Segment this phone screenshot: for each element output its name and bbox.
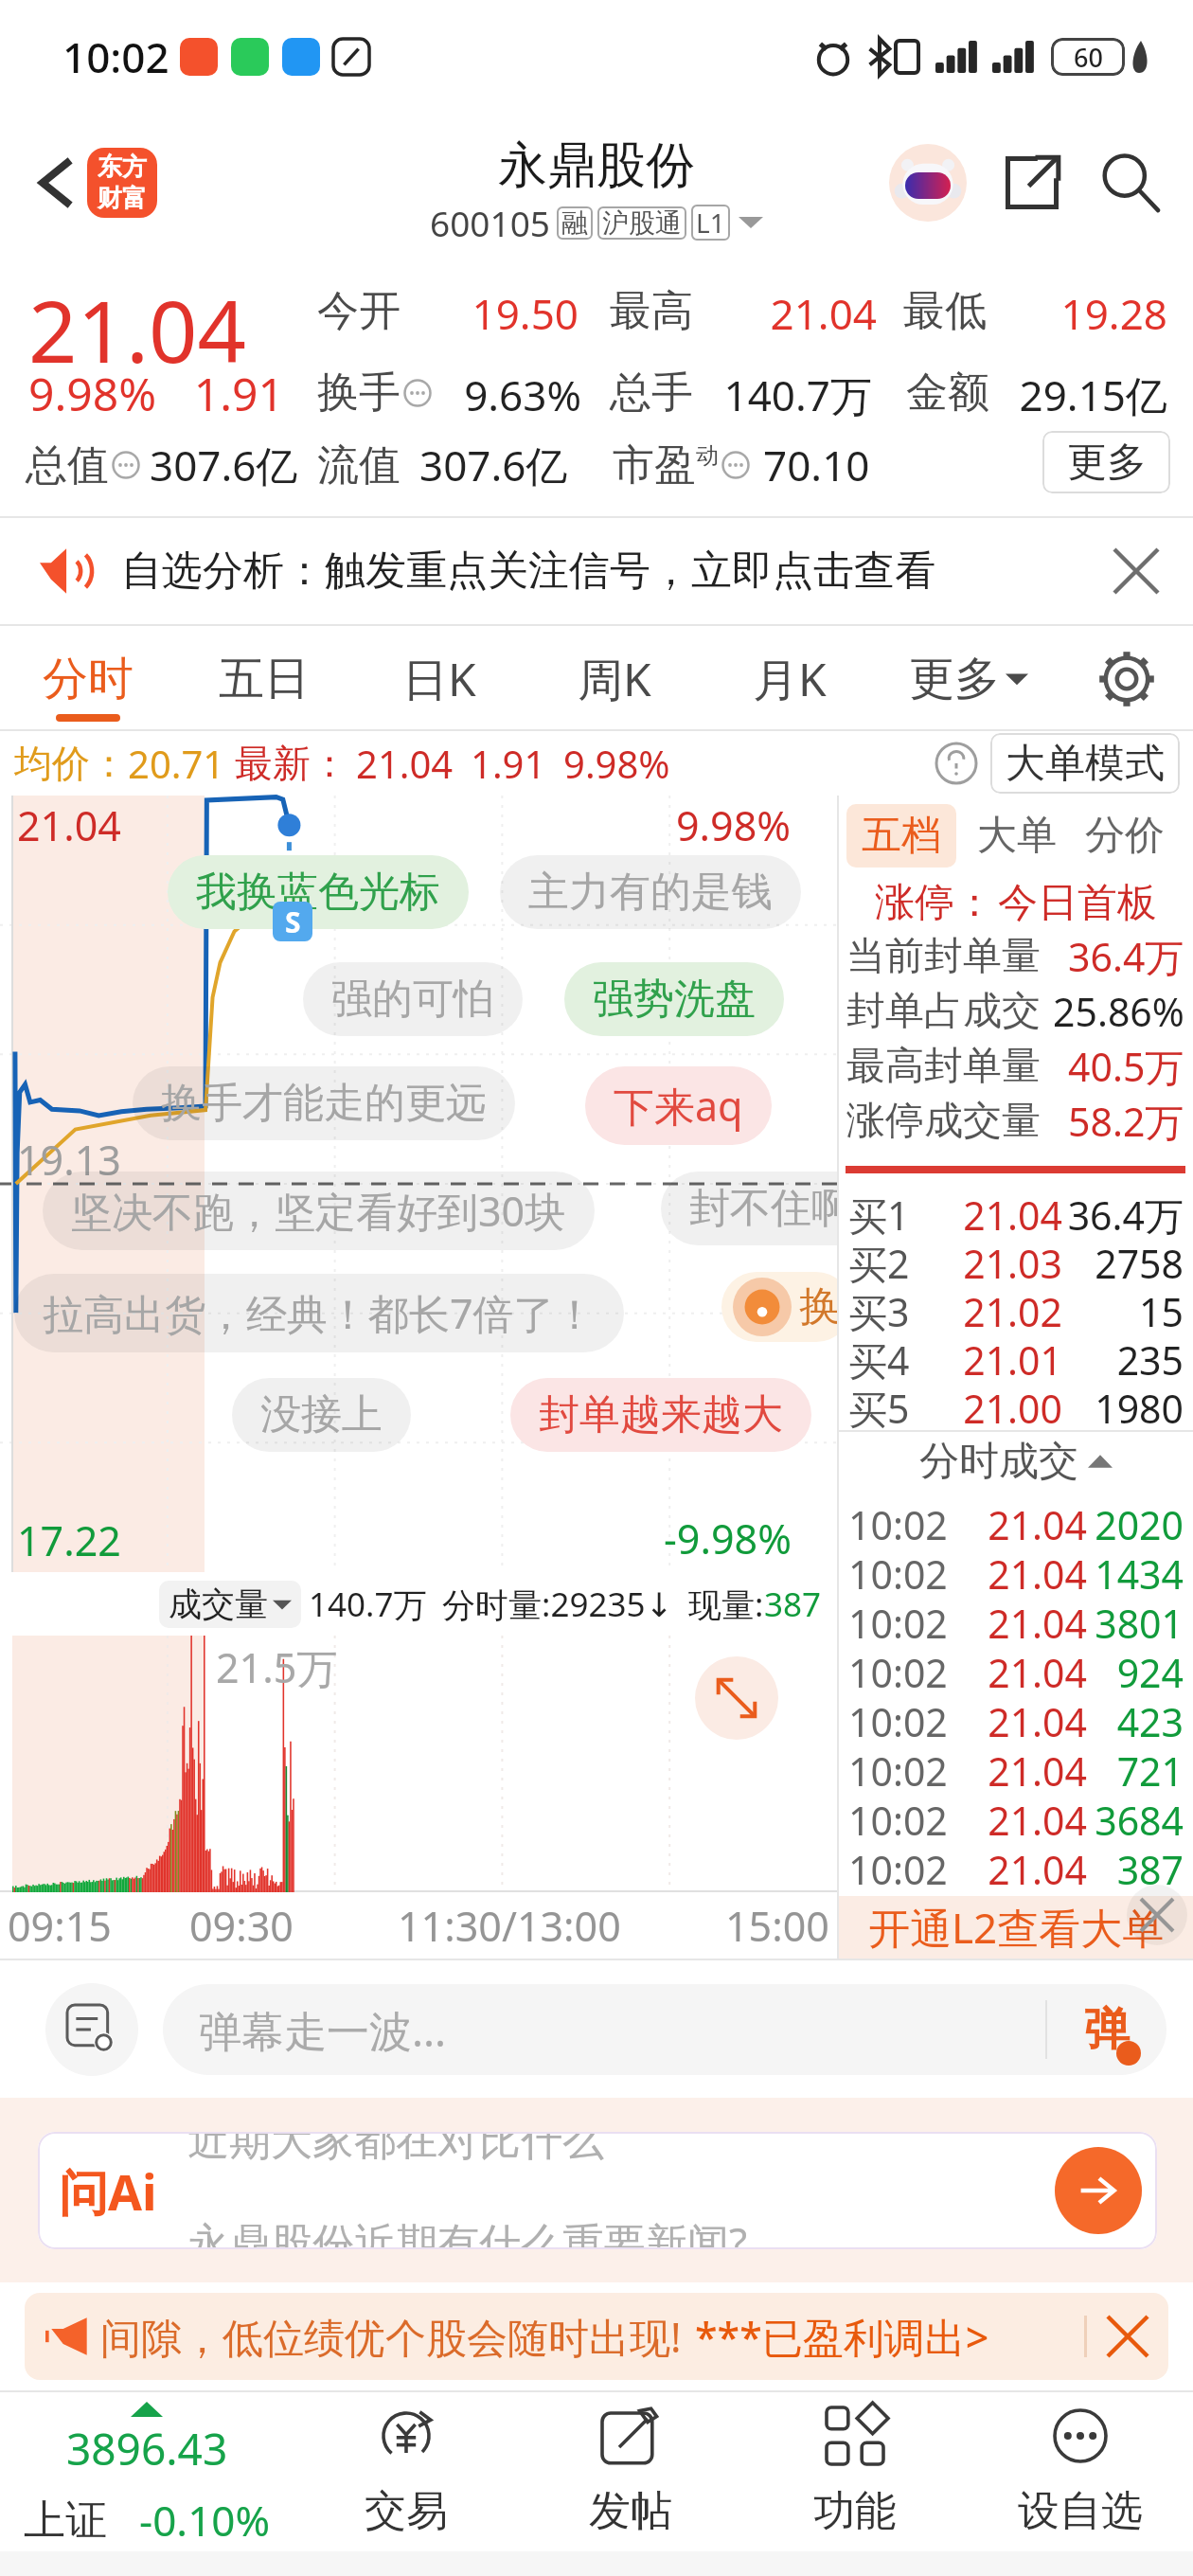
button[interactable]: 设自选: [968, 2392, 1193, 2551]
button[interactable]: 大单: [973, 801, 1060, 870]
button[interactable]: Ask: [1055, 2147, 1142, 2234]
button[interactable]: 成交量: [169, 1583, 292, 1625]
staticText: 3896.43: [66, 2419, 228, 2478]
button[interactable]: 交易: [294, 2392, 518, 2551]
staticText: 涨停：: [875, 878, 994, 928]
staticText: 21.04: [954, 1597, 1087, 1646]
staticText: L1: [696, 205, 725, 241]
staticText: 21.04: [28, 272, 247, 388]
staticText: 21.04: [951, 1189, 1062, 1237]
button[interactable]: 功能: [742, 2392, 968, 2551]
staticText: 市盈: [613, 439, 696, 492]
staticText: 10:02: [848, 1597, 954, 1646]
button[interactable]: 五档: [862, 811, 941, 861]
button[interactable]: 大单模式: [1006, 733, 1165, 794]
button[interactable]: 间隙，低位绩优个股会随时出现!: [25, 2293, 1168, 2380]
button[interactable]: 五日: [176, 626, 351, 731]
staticText: 买5: [848, 1382, 951, 1430]
staticText: 307.6亿: [150, 437, 298, 493]
staticText: 21.5万: [216, 1639, 338, 1695]
button[interactable]: 买5: [848, 1382, 1184, 1430]
staticText: 封单占成交: [846, 987, 1041, 1036]
staticText: 近期大家都在对比什么: [187, 2132, 604, 2167]
staticText: 60: [1074, 40, 1103, 75]
button[interactable]: Close: [1087, 2293, 1168, 2380]
staticText: 今开: [317, 285, 401, 337]
staticText: 36.4万: [1068, 930, 1184, 983]
staticText: S: [285, 903, 301, 941]
button[interactable]: Fullscreen: [695, 1656, 778, 1740]
staticText: 29.15亿: [0, 367, 1167, 423]
staticText: 21.04: [954, 1646, 1087, 1695]
button[interactable]: 问Ai: [38, 2132, 1157, 2249]
staticText: 金额: [906, 367, 989, 419]
button[interactable]: Share: [987, 137, 1077, 228]
button[interactable]: 分时: [0, 626, 176, 731]
staticText: 19.13: [17, 1132, 121, 1188]
staticText: 21.04: [954, 1744, 1087, 1794]
staticText: 最低: [903, 285, 987, 337]
staticText: 307.6亿: [419, 437, 568, 493]
staticText: 换手: [317, 367, 401, 419]
button[interactable]: Help: [934, 741, 979, 786]
staticText: 没接上: [260, 1389, 383, 1440]
button[interactable]: 买2: [848, 1237, 1184, 1285]
staticText: 发帖: [589, 2485, 672, 2537]
button[interactable]: 自选分析：触发重点关注信号，立即点击查看: [0, 518, 1193, 624]
button[interactable]: 更多: [877, 626, 1060, 731]
staticText: 总值: [26, 439, 109, 492]
staticText: 月K: [753, 648, 827, 710]
staticText: 分时: [43, 651, 134, 707]
staticText: 10:02: [848, 1794, 954, 1843]
staticText: 10:02: [848, 1843, 954, 1892]
staticText: 1980: [1062, 1382, 1184, 1430]
staticText: 2020: [1087, 1498, 1184, 1547]
staticText: 分时成交: [919, 1437, 1078, 1487]
button[interactable]: 日K: [351, 626, 526, 731]
staticText: 更多: [909, 651, 1000, 707]
button[interactable]: 开通L2查看大单: [839, 1896, 1193, 1959]
staticText: 永鼎股份近期有什么重要新闻?: [187, 2213, 748, 2249]
staticText: 周K: [578, 648, 651, 710]
button[interactable]: 买4: [848, 1333, 1184, 1382]
staticText: 下来aq: [614, 1078, 743, 1134]
staticText: 1.91: [471, 738, 546, 789]
button[interactable]: 买1: [848, 1189, 1184, 1237]
button[interactable]: 3896.43: [0, 2392, 294, 2551]
staticText: 弹幕走一波...: [199, 2001, 447, 2059]
button[interactable]: Back: [9, 137, 100, 228]
staticText: 9.98%: [676, 797, 792, 853]
staticText: 1.91: [0, 363, 284, 424]
staticText: 10:02: [848, 1695, 954, 1744]
button[interactable]: Settings: [1060, 626, 1193, 731]
button[interactable]: 月K: [702, 626, 877, 731]
staticText: 均价：: [14, 740, 128, 787]
staticText: 58.2万: [1068, 1095, 1184, 1148]
button[interactable]: 更多: [1042, 431, 1170, 493]
staticText: 成交量: [169, 1583, 268, 1625]
staticText: 总手: [610, 367, 693, 419]
staticText: 强的可怕: [331, 974, 494, 1025]
staticText: 70.10: [763, 437, 870, 493]
staticText: 当前封单量: [846, 932, 1041, 981]
button[interactable]: 分价: [1081, 801, 1168, 870]
button[interactable]: East Money: [87, 148, 157, 218]
staticText: 19.28: [0, 285, 1167, 342]
staticText: 设自选: [1018, 2485, 1143, 2537]
staticText: 换手才能走的更远: [161, 1078, 487, 1129]
staticText: 9.98%: [563, 738, 670, 789]
button[interactable]: AI assistant: [882, 137, 973, 228]
button[interactable]: Close: [1089, 524, 1184, 618]
button[interactable]: Close: [1127, 1885, 1187, 1945]
staticText: 21.04: [954, 1695, 1087, 1744]
staticText: 10:02: [848, 1646, 954, 1695]
button[interactable]: 周K: [526, 626, 702, 731]
staticText: 最高封单量: [846, 1042, 1041, 1091]
button[interactable]: 弹幕走一波...: [163, 1984, 1166, 2075]
staticText: 36.4万: [1062, 1189, 1184, 1237]
staticText: 21.04: [0, 285, 877, 342]
button[interactable]: 发帖: [518, 2392, 742, 2551]
button[interactable]: Search: [1083, 135, 1178, 230]
button[interactable]: 买3: [848, 1285, 1184, 1333]
button[interactable]: Notes: [45, 1983, 138, 2076]
